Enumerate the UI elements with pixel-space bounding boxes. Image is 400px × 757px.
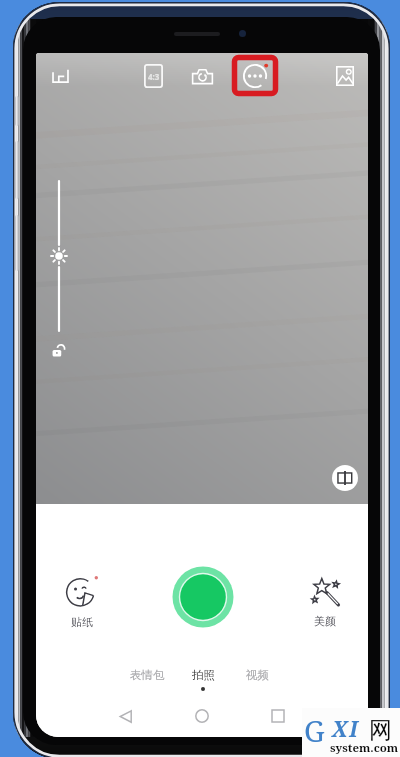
button[interactable]: More options <box>232 55 278 96</box>
button[interactable]: 视频 <box>237 668 277 687</box>
staticText: 美颜 <box>314 614 336 628</box>
staticText: 视频 <box>246 668 269 682</box>
button[interactable]: Switch camera <box>184 59 220 93</box>
button[interactable]: Aspect ratio 4 to 3 <box>144 64 163 88</box>
staticText: G <box>304 711 325 750</box>
staticText: 拍照 <box>192 668 215 682</box>
button[interactable]: 美颜 <box>293 576 357 628</box>
button[interactable]: Home <box>179 695 225 737</box>
staticText: 网 <box>369 716 392 745</box>
button[interactable]: Recent apps <box>255 695 301 737</box>
staticText: 贴纸 <box>71 615 93 629</box>
staticText: 4:3 <box>148 71 160 82</box>
button[interactable]: 贴纸 <box>50 576 114 629</box>
staticText: 表情包 <box>130 668 165 682</box>
button[interactable]: Shutter <box>171 565 235 629</box>
button[interactable]: Exposure slider <box>49 181 69 331</box>
button[interactable]: 表情包 <box>123 668 171 687</box>
staticText: XI <box>332 715 360 744</box>
staticText: system.com <box>330 740 399 756</box>
button[interactable]: Watermark <box>332 465 358 491</box>
button[interactable]: Lock exposure <box>51 343 67 359</box>
button[interactable]: Back <box>102 695 148 737</box>
button[interactable]: 拍照 <box>183 668 223 691</box>
button[interactable]: Flash off <box>41 59 79 93</box>
button[interactable]: Gallery <box>327 59 363 93</box>
